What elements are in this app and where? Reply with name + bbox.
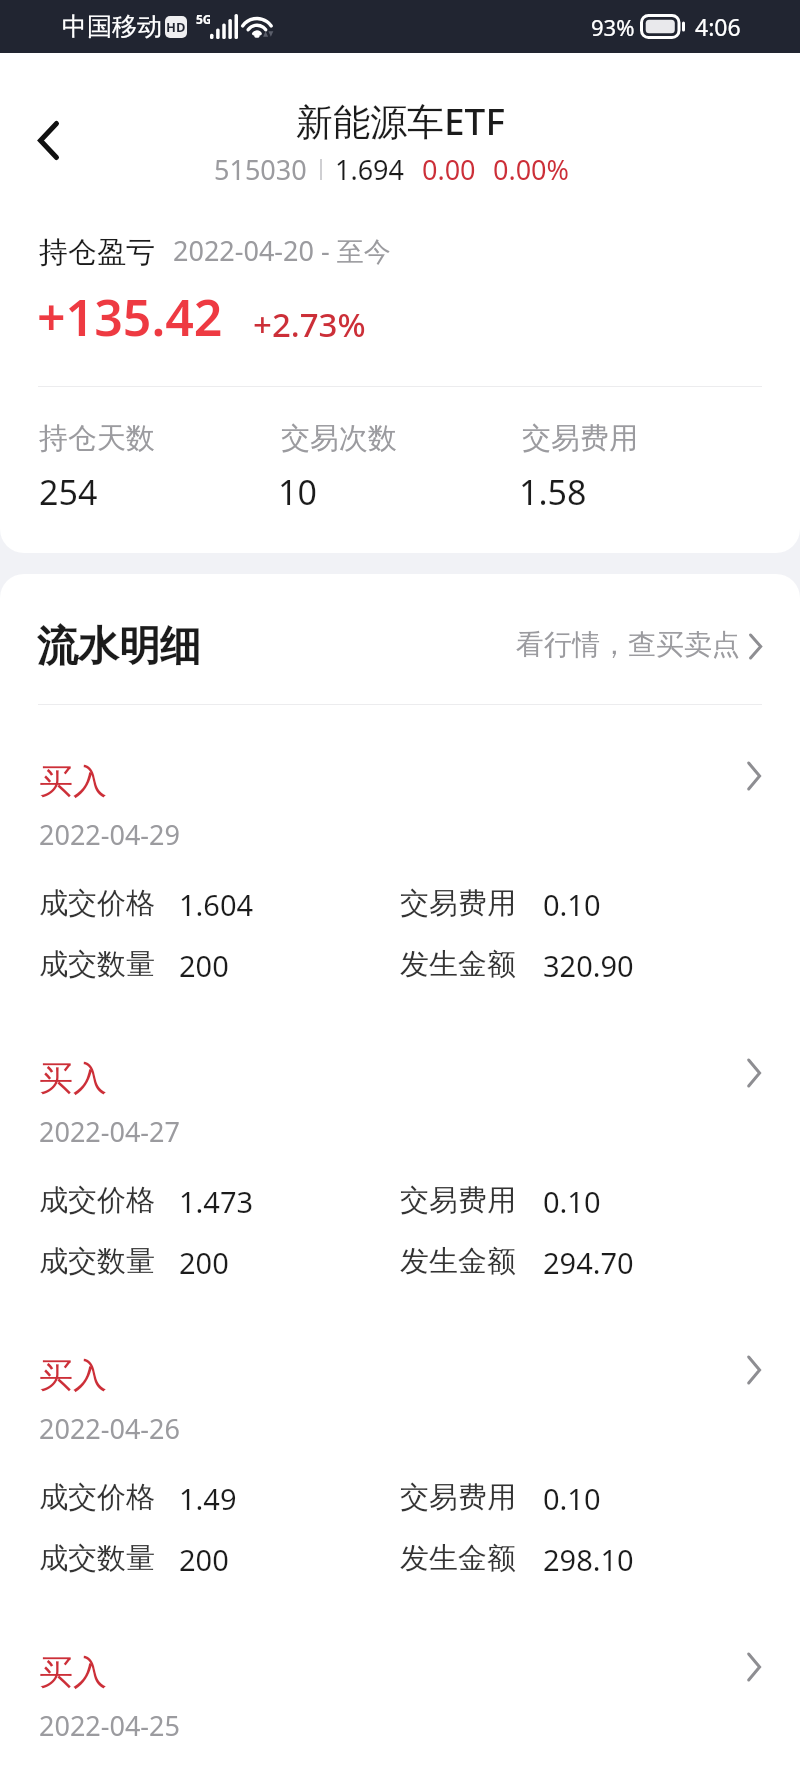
staticText: 93% [591,12,635,42]
button[interactable]: 看行情，查买卖点 [500,610,785,670]
staticText: 成交数量 [39,1243,155,1280]
staticText: 294.70 [543,1243,634,1282]
staticText: 200 [179,946,229,985]
staticText: 成交数量 [39,946,155,983]
staticText: 0.10 [543,1479,601,1518]
staticText: 流水明细 [37,621,201,673]
staticText: 515030 [214,151,307,188]
staticText: +2.73% [253,302,366,347]
staticText: 交易次数 [281,420,397,457]
staticText: 成交价格 [39,1182,155,1219]
staticText: 2022-04-27 [39,1113,180,1150]
staticText: 5G [196,11,210,27]
staticText: 持仓天数 [39,420,155,457]
staticText: 0.10 [543,885,601,924]
staticText: 320.90 [543,946,634,985]
staticText: 中国移动 [62,11,162,42]
staticText: 1.49 [179,1479,237,1518]
staticText: 2022-04-29 [39,816,180,853]
staticText: 10 [278,469,317,515]
staticText: 成交价格 [39,885,155,922]
staticText: 持仓盈亏 [39,234,155,271]
staticText: 200 [179,1540,229,1579]
staticText: 发生金额 [400,1243,516,1280]
staticText: 交易费用 [522,420,638,457]
staticText: 4:06 [695,11,741,42]
staticText: 买入 [39,1651,107,1694]
staticText: 交易费用 [400,1182,516,1219]
button[interactable]: 买入 [0,1033,800,1303]
staticText: 2022-04-25 [39,1707,180,1744]
button[interactable]: 买入 [0,1627,800,1755]
staticText: 买入 [39,1354,107,1397]
button[interactable]: 买入 [0,736,800,1006]
staticText: 0.00 [422,151,476,188]
staticText: 交易费用 [400,885,516,922]
staticText: 成交价格 [39,1479,155,1516]
staticText: 2022-04-26 [39,1410,180,1447]
staticText: 0.10 [543,1182,601,1221]
staticText: 买入 [39,1057,107,1100]
staticText: 交易费用 [400,1479,516,1516]
staticText: +135.42 [37,283,223,351]
staticText: 200 [179,1243,229,1282]
staticText: 看行情，查买卖点 [516,627,740,662]
button[interactable]: Back [17,109,79,171]
staticText: 1.473 [179,1182,254,1221]
button[interactable]: 买入 [0,1330,800,1600]
staticText: 0.00% [493,151,570,188]
staticText: 1.694 [335,151,405,188]
staticText: 1.58 [519,469,587,515]
staticText: 成交数量 [39,1540,155,1577]
staticText: 买入 [39,760,107,803]
staticText: 298.10 [543,1540,634,1579]
staticText: 1.604 [179,885,254,924]
staticText: 2022-04-20 - 至今 [173,232,391,269]
staticText: 新能源车ETF [296,95,505,146]
staticText: HD [166,18,186,36]
staticText: 254 [39,469,98,515]
staticText: 发生金额 [400,946,516,983]
staticText: 发生金额 [400,1540,516,1577]
